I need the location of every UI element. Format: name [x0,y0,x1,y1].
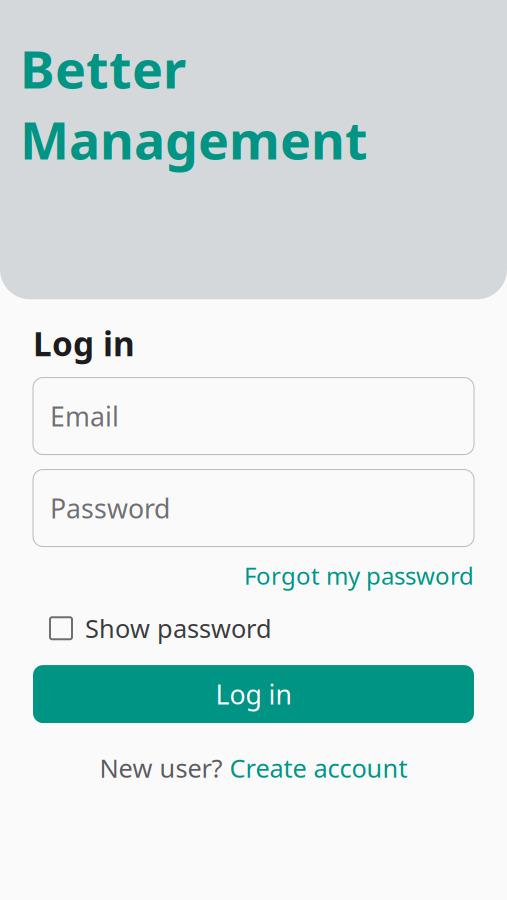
staticText: Show password [85,611,272,645]
staticText: Log in [215,676,291,712]
staticText: Management [20,105,368,174]
staticText: Email [50,398,119,434]
staticText: Create account [229,751,407,785]
staticText: Password [50,490,170,526]
staticText: Log in [33,321,135,366]
staticText: New user? [99,751,222,785]
button[interactable]: Forgot my password [244,560,474,591]
button[interactable]: Show password [50,611,272,645]
staticText: Better [20,34,186,103]
button[interactable]: Log in [33,665,474,723]
staticText: Forgot my password [244,560,474,591]
button[interactable]: Create account [229,751,407,785]
